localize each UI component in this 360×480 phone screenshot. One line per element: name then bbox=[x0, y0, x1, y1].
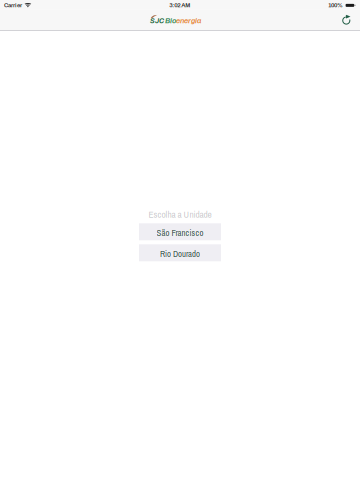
staticText: energia bbox=[176, 17, 201, 25]
staticText: São Francisco bbox=[156, 227, 203, 239]
staticText: 3:02 AM bbox=[169, 2, 190, 9]
staticText: SJC bbox=[150, 17, 164, 25]
staticText: Rio Dourado bbox=[160, 248, 200, 260]
staticText bbox=[164, 19, 165, 23]
staticText: 100% bbox=[328, 2, 343, 9]
button[interactable]: Rio Dourado bbox=[139, 244, 221, 261]
staticText: Escolha a Unidade bbox=[148, 208, 211, 221]
staticText: Bio bbox=[165, 17, 176, 25]
staticText: Carrier bbox=[4, 2, 22, 9]
button[interactable]: Refresh bbox=[336, 10, 357, 29]
button[interactable]: São Francisco bbox=[139, 223, 221, 240]
